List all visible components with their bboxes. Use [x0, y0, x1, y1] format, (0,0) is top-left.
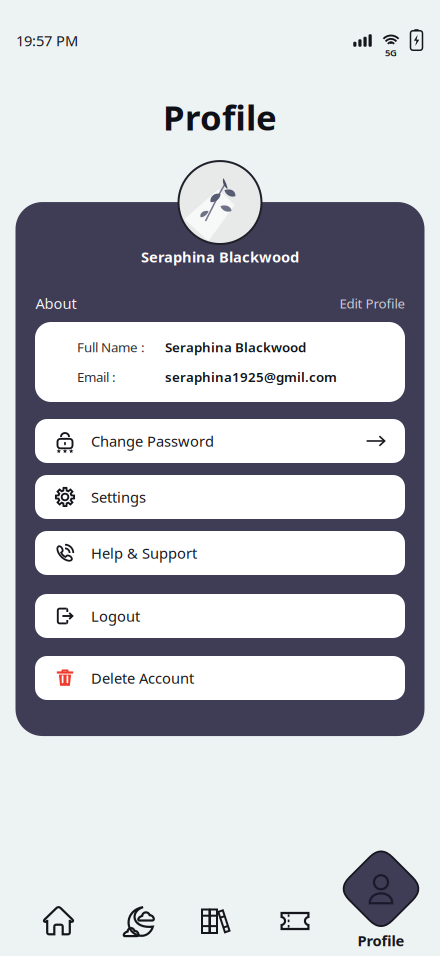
button[interactable]: Settings: [35, 475, 405, 519]
staticText: 5G: [385, 46, 397, 59]
staticText: Edit Profile: [339, 294, 405, 312]
staticText: Logout: [91, 606, 140, 626]
staticText: Profile: [357, 931, 404, 950]
staticText: 19:57 PM: [16, 31, 78, 50]
staticText: Change Password: [91, 431, 214, 451]
button[interactable]: Sleep: [110, 897, 168, 945]
button[interactable]: Tickets: [266, 897, 324, 945]
button[interactable]: Library: [186, 897, 244, 945]
button[interactable]: Delete Account: [35, 656, 405, 700]
staticText: Seraphina Blackwood: [165, 338, 306, 356]
staticText: Full Name :: [77, 338, 145, 356]
button[interactable]: Profile: [333, 848, 429, 951]
button[interactable]: Help & Support: [35, 531, 405, 575]
button[interactable]: Home: [29, 897, 87, 945]
staticText: Profile: [163, 94, 277, 140]
button[interactable]: Change Password: [35, 419, 405, 463]
staticText: Email :: [77, 368, 116, 386]
staticText: Settings: [91, 487, 146, 507]
staticText: About: [35, 293, 76, 313]
staticText: seraphina1925@gmil.com: [165, 368, 337, 386]
staticText: Help & Support: [91, 543, 197, 563]
button[interactable]: Edit Profile: [339, 294, 405, 312]
staticText: Seraphina Blackwood: [141, 247, 299, 266]
button[interactable]: Logout: [35, 594, 405, 638]
staticText: Delete Account: [91, 668, 194, 688]
